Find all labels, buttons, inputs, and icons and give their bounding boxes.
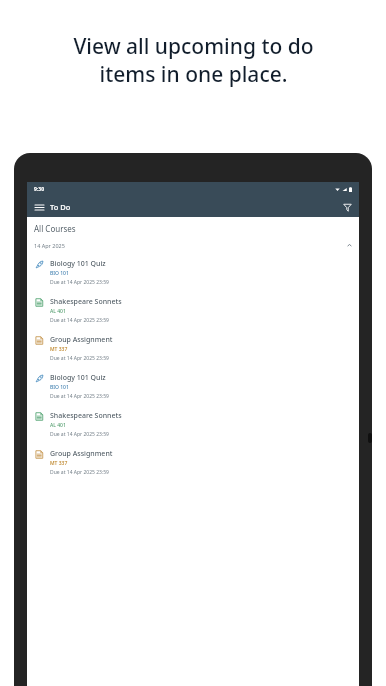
staticText: 14 Apr 2025: [34, 242, 65, 249]
button[interactable]: Open navigation menu: [31, 199, 47, 215]
button[interactable]: Shakespeare Sonnets: [27, 294, 359, 328]
staticText: Shakespeare Sonnets: [50, 297, 122, 307]
button[interactable]: Group Assignment: [27, 446, 359, 480]
staticText: Due at 14 Apr 2025 23:59: [50, 317, 109, 324]
staticText: BIO 101: [50, 384, 69, 391]
staticText: Biology 101 Quiz: [50, 373, 106, 383]
button[interactable]: Shakespeare Sonnets: [27, 408, 359, 442]
staticText: View all upcoming to do items in one pla…: [73, 32, 314, 88]
staticText: Due at 14 Apr 2025 23:59: [50, 393, 109, 400]
button[interactable]: 14 Apr 2025: [27, 242, 359, 249]
staticText: Due at 14 Apr 2025 23:59: [50, 355, 109, 362]
staticText: Shakespeare Sonnets: [50, 411, 122, 421]
button[interactable]: Group Assignment: [27, 332, 359, 366]
staticText: Due at 14 Apr 2025 23:59: [50, 469, 109, 476]
staticText: Due at 14 Apr 2025 23:59: [50, 431, 109, 438]
button[interactable]: Biology 101 Quiz: [27, 370, 359, 404]
staticText: All Courses: [34, 223, 76, 234]
staticText: 9:30: [34, 186, 44, 193]
button[interactable]: Biology 101 Quiz: [27, 256, 359, 290]
staticText: AL 401: [50, 422, 66, 429]
staticText: MT 337: [50, 460, 68, 467]
button[interactable]: Filter: [339, 199, 355, 215]
staticText: BIO 101: [50, 270, 69, 277]
staticText: Group Assignment: [50, 449, 113, 459]
staticText: Due at 14 Apr 2025 23:59: [50, 279, 109, 286]
staticText: AL 401: [50, 308, 66, 315]
staticText: MT 337: [50, 346, 68, 353]
staticText: Group Assignment: [50, 335, 113, 345]
staticText: Biology 101 Quiz: [50, 259, 106, 269]
staticText: To Do: [50, 202, 71, 212]
